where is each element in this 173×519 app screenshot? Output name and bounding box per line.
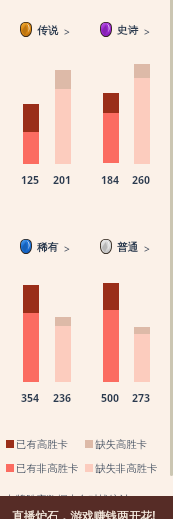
staticText: 354 bbox=[21, 391, 40, 405]
staticText: 缺失高胜卡 bbox=[95, 438, 147, 451]
button[interactable]: 普通 bbox=[100, 239, 122, 254]
button[interactable]: 缺失高胜卡 bbox=[85, 437, 147, 451]
button[interactable]: 史诗 bbox=[100, 22, 122, 37]
staticText: 稀有 bbox=[37, 241, 59, 254]
staticText: 273 bbox=[132, 391, 151, 405]
staticText: 236 bbox=[53, 391, 72, 405]
staticText: > bbox=[144, 25, 150, 39]
button[interactable]: 直播炉石，游戏赚钱两开花! bbox=[0, 496, 173, 519]
staticText: 直播炉石，游戏赚钱两开花! bbox=[12, 507, 156, 519]
staticText: 184 bbox=[101, 173, 120, 187]
staticText: > bbox=[64, 25, 70, 39]
staticText: 201 bbox=[53, 173, 72, 187]
button[interactable]: 稀有 bbox=[20, 239, 42, 254]
staticText: > bbox=[64, 242, 70, 256]
staticText: 传说 bbox=[37, 24, 59, 37]
staticText: 卡牌胜率数据来自对战统计 bbox=[5, 493, 130, 506]
staticText: 500 bbox=[101, 391, 120, 405]
staticText: 260 bbox=[132, 173, 151, 187]
button[interactable]: 已有高胜卡 bbox=[6, 437, 68, 451]
button[interactable]: 已有非高胜卡 bbox=[6, 461, 79, 475]
staticText: 已有高胜卡 bbox=[16, 438, 68, 451]
button[interactable]: 缺失非高胜卡 bbox=[85, 461, 158, 475]
staticText: 史诗 bbox=[117, 24, 139, 37]
staticText: 普通 bbox=[117, 241, 139, 254]
staticText: 125 bbox=[21, 173, 40, 187]
staticText: > bbox=[144, 242, 150, 256]
staticText: 已有非高胜卡 bbox=[16, 462, 79, 475]
staticText: 缺失非高胜卡 bbox=[95, 462, 158, 475]
button[interactable]: 传说 bbox=[20, 22, 42, 37]
